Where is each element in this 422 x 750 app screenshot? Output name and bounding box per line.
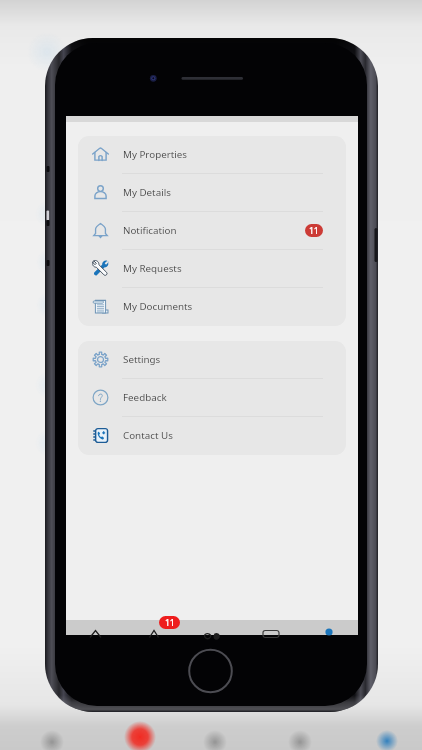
staticText: My Properties	[123, 148, 188, 161]
staticText: Feedback	[123, 391, 167, 404]
button[interactable]: My Requests	[78, 250, 346, 288]
button[interactable]: Settings	[78, 341, 346, 379]
button[interactable]: Contact Us	[78, 417, 346, 455]
button[interactable]: My Details	[78, 174, 346, 212]
staticText: My Details	[123, 186, 171, 199]
button[interactable]: Notification	[78, 212, 346, 250]
staticText: My Requests	[123, 262, 182, 275]
button[interactable]: Feedback	[78, 379, 346, 417]
button[interactable]: Profile	[300, 620, 358, 635]
staticText: Notification	[123, 224, 177, 237]
staticText: 11	[309, 225, 319, 237]
staticText: Contact Us	[123, 429, 173, 442]
button[interactable]: Documents	[242, 620, 300, 635]
staticText: 11	[165, 617, 175, 629]
staticText: My Documents	[123, 300, 193, 313]
staticText: Settings	[123, 353, 161, 366]
button[interactable]: Notifications	[125, 620, 184, 635]
button[interactable]: My Documents	[78, 288, 346, 326]
button[interactable]: My Properties	[78, 136, 346, 174]
button[interactable]: Home	[66, 620, 125, 635]
button[interactable]: Requests	[184, 620, 242, 635]
